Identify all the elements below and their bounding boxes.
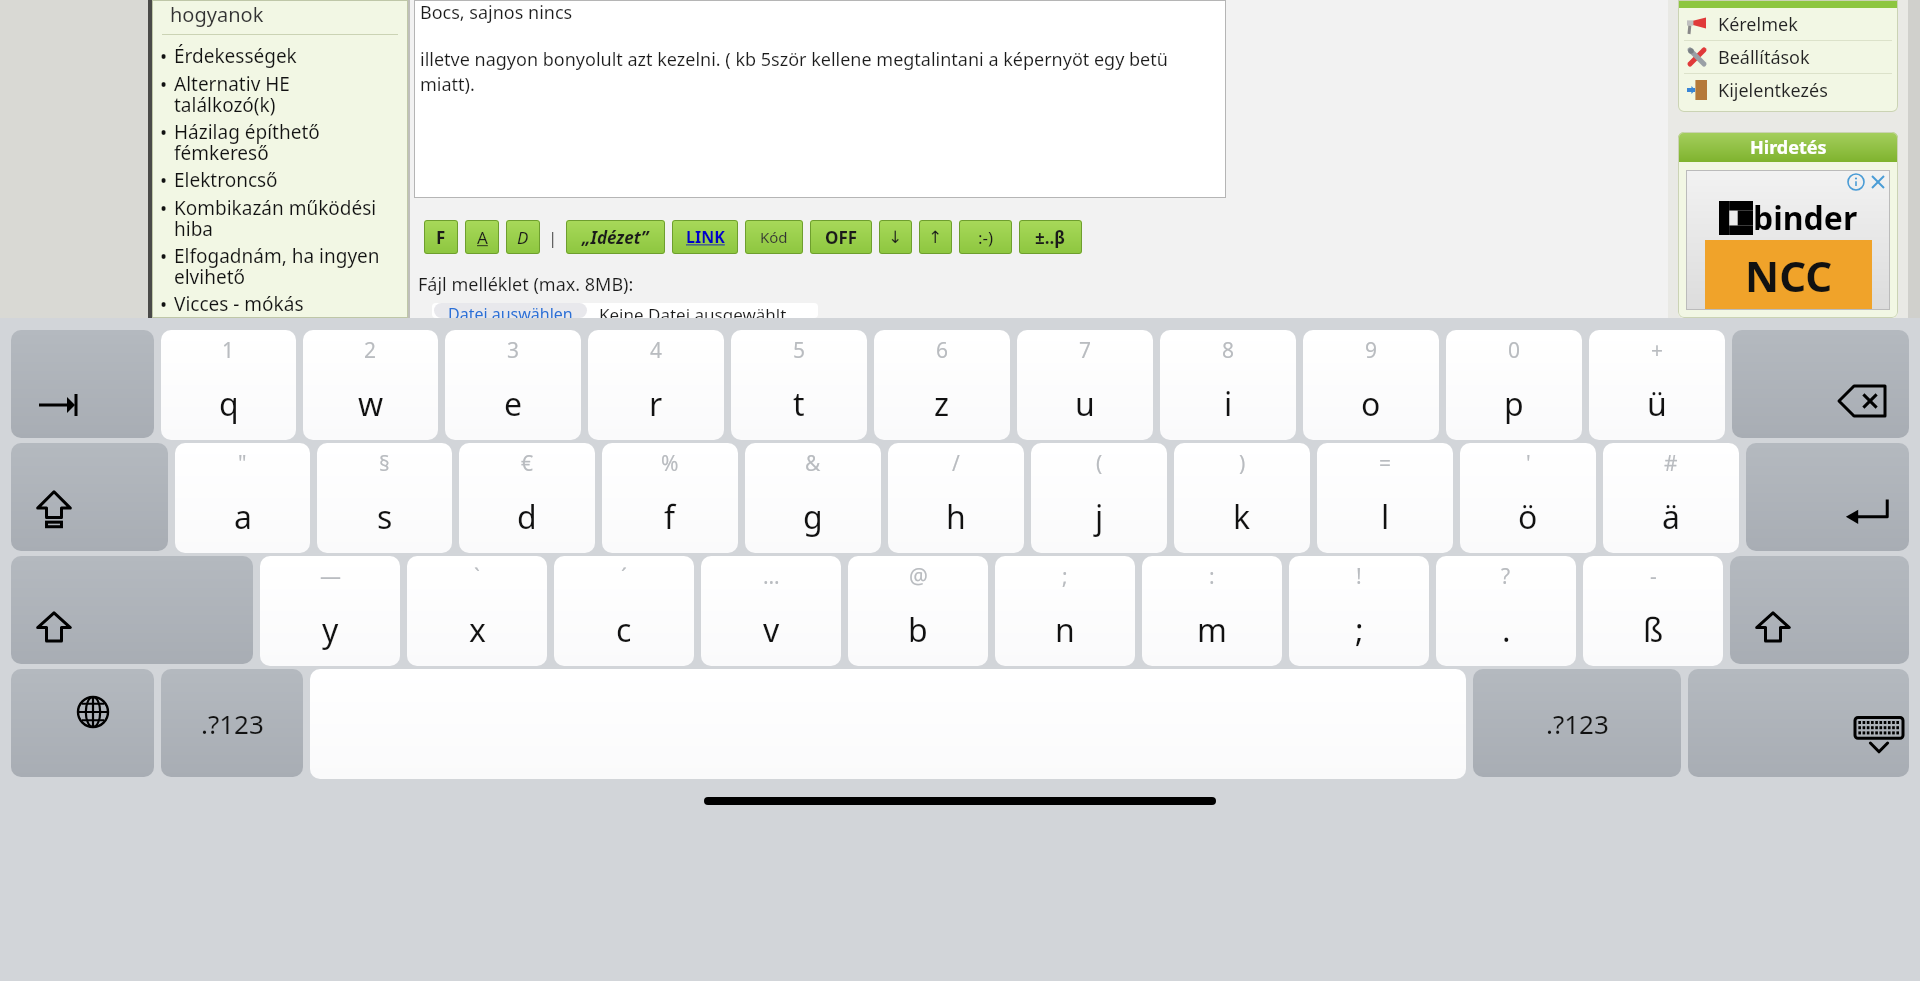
- staticText: •: [160, 168, 168, 194]
- button[interactable]: •: [152, 119, 408, 167]
- button[interactable]: •: [152, 291, 408, 318]
- button[interactable]: Close ad: [1870, 174, 1886, 190]
- button[interactable]: §: [317, 443, 452, 553]
- button[interactable]: Shift: [1730, 556, 1909, 664]
- button[interactable]: ?: [1436, 556, 1576, 666]
- staticText: …: [763, 562, 780, 591]
- button[interactable]: &: [745, 443, 881, 553]
- button[interactable]: •: [152, 43, 408, 71]
- button[interactable]: …: [701, 556, 841, 666]
- staticText: D: [517, 226, 529, 249]
- button[interactable]: !: [1289, 556, 1429, 666]
- staticText: k: [1233, 495, 1251, 539]
- button[interactable]: #: [1603, 443, 1739, 553]
- staticText: ↑: [928, 227, 943, 247]
- staticText: Elfogadnám, ha ingyen elvihető: [174, 243, 380, 290]
- button[interactable]: @: [848, 556, 988, 666]
- staticText: ä: [1662, 495, 1680, 539]
- button[interactable]: Shift: [11, 556, 253, 664]
- button[interactable]: %: [602, 443, 738, 553]
- staticText: Bocs, sajnos nincs: [420, 0, 573, 25]
- staticText: y: [322, 608, 339, 652]
- button[interactable]: OFF: [810, 220, 872, 254]
- button[interactable]: ±..β: [1019, 220, 1082, 254]
- button[interactable]: .?123: [161, 669, 303, 777]
- staticText: -: [1650, 562, 1657, 591]
- button[interactable]: 8: [1160, 330, 1296, 440]
- staticText: n: [1055, 608, 1075, 652]
- button[interactable]: 3: [445, 330, 581, 440]
- button[interactable]: (: [1031, 443, 1167, 553]
- staticText: b: [908, 608, 928, 652]
- staticText: 2: [364, 336, 377, 365]
- button[interactable]: :-): [959, 220, 1012, 254]
- button[interactable]: Change language: [11, 669, 154, 777]
- button[interactable]: •: [152, 243, 408, 291]
- button[interactable]: 4: [588, 330, 724, 440]
- button[interactable]: Beállítások: [1678, 41, 1898, 73]
- button[interactable]: ': [1460, 443, 1596, 553]
- button[interactable]: ;: [995, 556, 1135, 666]
- button[interactable]: +: [1589, 330, 1725, 440]
- button[interactable]: Enter: [1746, 443, 1909, 551]
- staticText: ?: [1501, 562, 1511, 591]
- staticText: c: [616, 608, 632, 652]
- staticText: l: [1381, 495, 1390, 539]
- button[interactable]: —: [260, 556, 400, 666]
- button[interactable]: •: [152, 71, 408, 119]
- button[interactable]: 1: [161, 330, 296, 440]
- button[interactable]: Backspace: [1732, 330, 1909, 438]
- button[interactable]: ): [1174, 443, 1310, 553]
- button[interactable]: Ad info: [1848, 174, 1864, 190]
- button[interactable]: /: [888, 443, 1024, 553]
- button[interactable]: Caps lock: [11, 443, 168, 551]
- button[interactable]: Kód: [745, 220, 803, 254]
- button[interactable]: Datei auswählen: [432, 303, 818, 318]
- staticText: x: [469, 608, 486, 652]
- staticText: .?123: [1546, 706, 1609, 741]
- staticText: •: [160, 196, 168, 222]
- button[interactable]: .?123: [1473, 669, 1681, 777]
- button[interactable]: Bocs, sajnos nincs: [414, 0, 1226, 198]
- button[interactable]: :: [1142, 556, 1282, 666]
- button[interactable]: 6: [874, 330, 1010, 440]
- button[interactable]: LINK: [672, 220, 738, 254]
- staticText: 1: [222, 336, 235, 365]
- button[interactable]: 0: [1446, 330, 1582, 440]
- button[interactable]: F: [424, 220, 458, 254]
- button[interactable]: 9: [1303, 330, 1439, 440]
- button[interactable]: ↓: [879, 220, 912, 254]
- button[interactable]: D: [506, 220, 540, 254]
- button[interactable]: -: [1583, 556, 1723, 666]
- button[interactable]: ↑: [919, 220, 952, 254]
- staticText: a: [234, 495, 252, 539]
- button[interactable]: Hide keyboard: [1688, 669, 1909, 777]
- staticText: @: [909, 562, 928, 591]
- button[interactable]: •: [152, 195, 408, 243]
- staticText: Datei auswählen: [448, 303, 573, 318]
- staticText: Házilag építhető fémkereső: [174, 119, 320, 166]
- staticText: 6: [936, 336, 949, 365]
- staticText: &: [805, 449, 821, 478]
- button[interactable]: ": [175, 443, 310, 553]
- staticText: m: [1197, 608, 1227, 652]
- button[interactable]: •: [152, 167, 408, 195]
- button[interactable]: `: [407, 556, 547, 666]
- button[interactable]: A: [465, 220, 499, 254]
- button[interactable]: Kérelmek: [1678, 8, 1898, 40]
- button[interactable]: €: [459, 443, 595, 553]
- button[interactable]: „Idézet”: [566, 220, 665, 254]
- button[interactable]: Tab: [11, 330, 154, 438]
- staticText: %: [661, 449, 679, 478]
- button[interactable]: =: [1317, 443, 1453, 553]
- button[interactable]: 7: [1017, 330, 1153, 440]
- staticText: `: [474, 562, 480, 591]
- staticText: ): [1239, 449, 1246, 478]
- button[interactable]: 2: [303, 330, 438, 440]
- staticText: 5: [793, 336, 806, 365]
- button[interactable]: ´: [554, 556, 694, 666]
- button[interactable]: Kijelentkezés: [1678, 74, 1898, 106]
- staticText: :-): [978, 226, 994, 249]
- button[interactable]: 5: [731, 330, 867, 440]
